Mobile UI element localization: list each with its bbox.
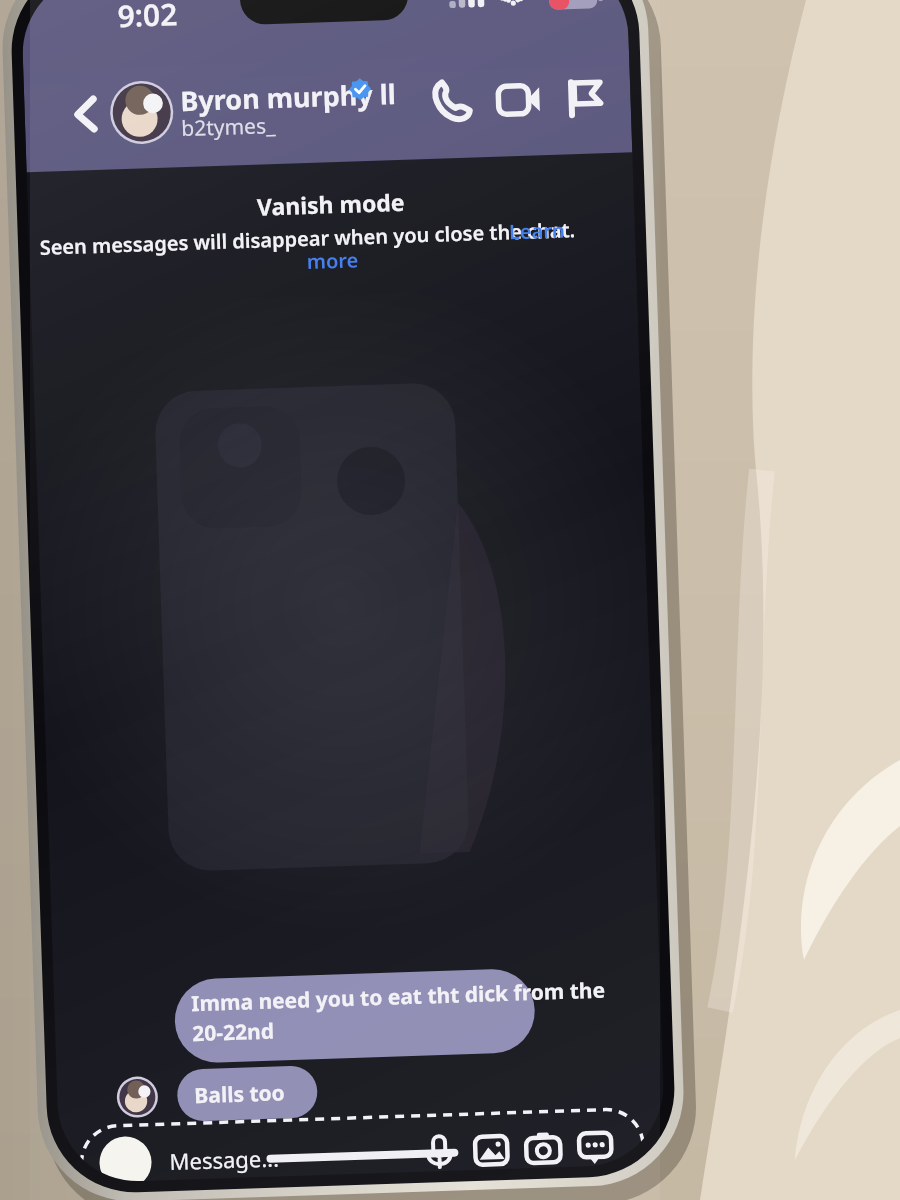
button[interactable]: Instagram direct message, vanish mode — [0, 0, 900, 1200]
